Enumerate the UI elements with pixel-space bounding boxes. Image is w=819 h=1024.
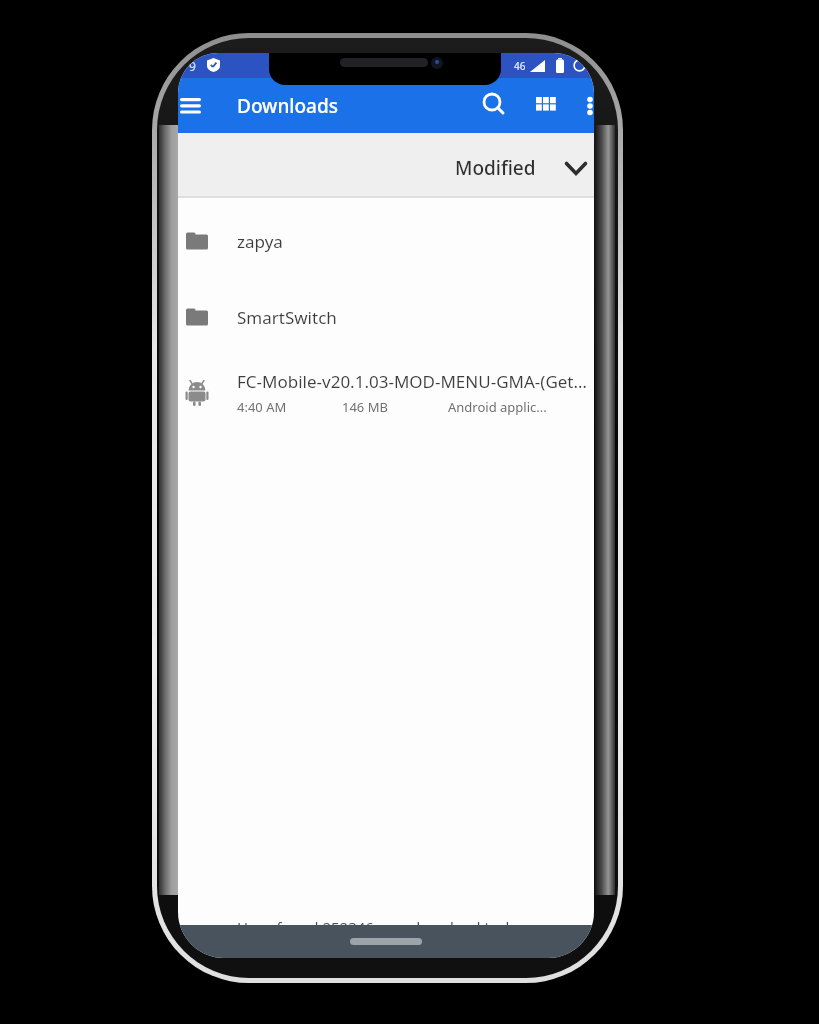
- button[interactable]: [477, 90, 508, 121]
- staticText: Have found 252346 new download tasks: [237, 917, 521, 937]
- staticText: FC-Mobile-v20.1.03-MOD-MENU-GMA-(Getmods…: [237, 370, 593, 393]
- staticText: SmartSwitch: [237, 306, 337, 329]
- button[interactable]: FC-Mobile-v20.1.03-MOD-MENU-GMA-(Getmods…: [178, 355, 594, 431]
- button[interactable]: [578, 90, 593, 121]
- staticText: Android applic...: [448, 398, 547, 416]
- staticText: Modified: [455, 155, 536, 181]
- staticText: 4:40 AM: [237, 398, 287, 416]
- staticText: zapya: [237, 230, 283, 253]
- button[interactable]: Modified: [178, 133, 594, 198]
- button[interactable]: SmartSwitch: [178, 279, 594, 355]
- button[interactable]: [350, 938, 422, 945]
- button[interactable]: zapya: [178, 203, 594, 279]
- staticText: Downloads: [237, 93, 338, 119]
- staticText: 146 MB: [342, 398, 388, 416]
- button[interactable]: [178, 94, 206, 118]
- button[interactable]: [535, 90, 565, 121]
- staticText: 9: [189, 58, 196, 74]
- staticText: 46: [514, 59, 526, 73]
